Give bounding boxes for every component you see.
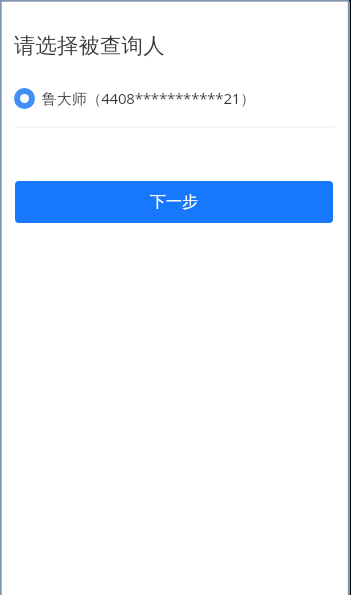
staticText: 下一步 <box>150 192 198 212</box>
staticText: 鲁大师（4408***********21） <box>42 88 255 108</box>
staticText: 请选择被查询人 <box>14 32 165 59</box>
button[interactable]: 下一步 <box>15 181 333 223</box>
button[interactable]: 鲁大师（4408***********21） <box>0 82 351 114</box>
